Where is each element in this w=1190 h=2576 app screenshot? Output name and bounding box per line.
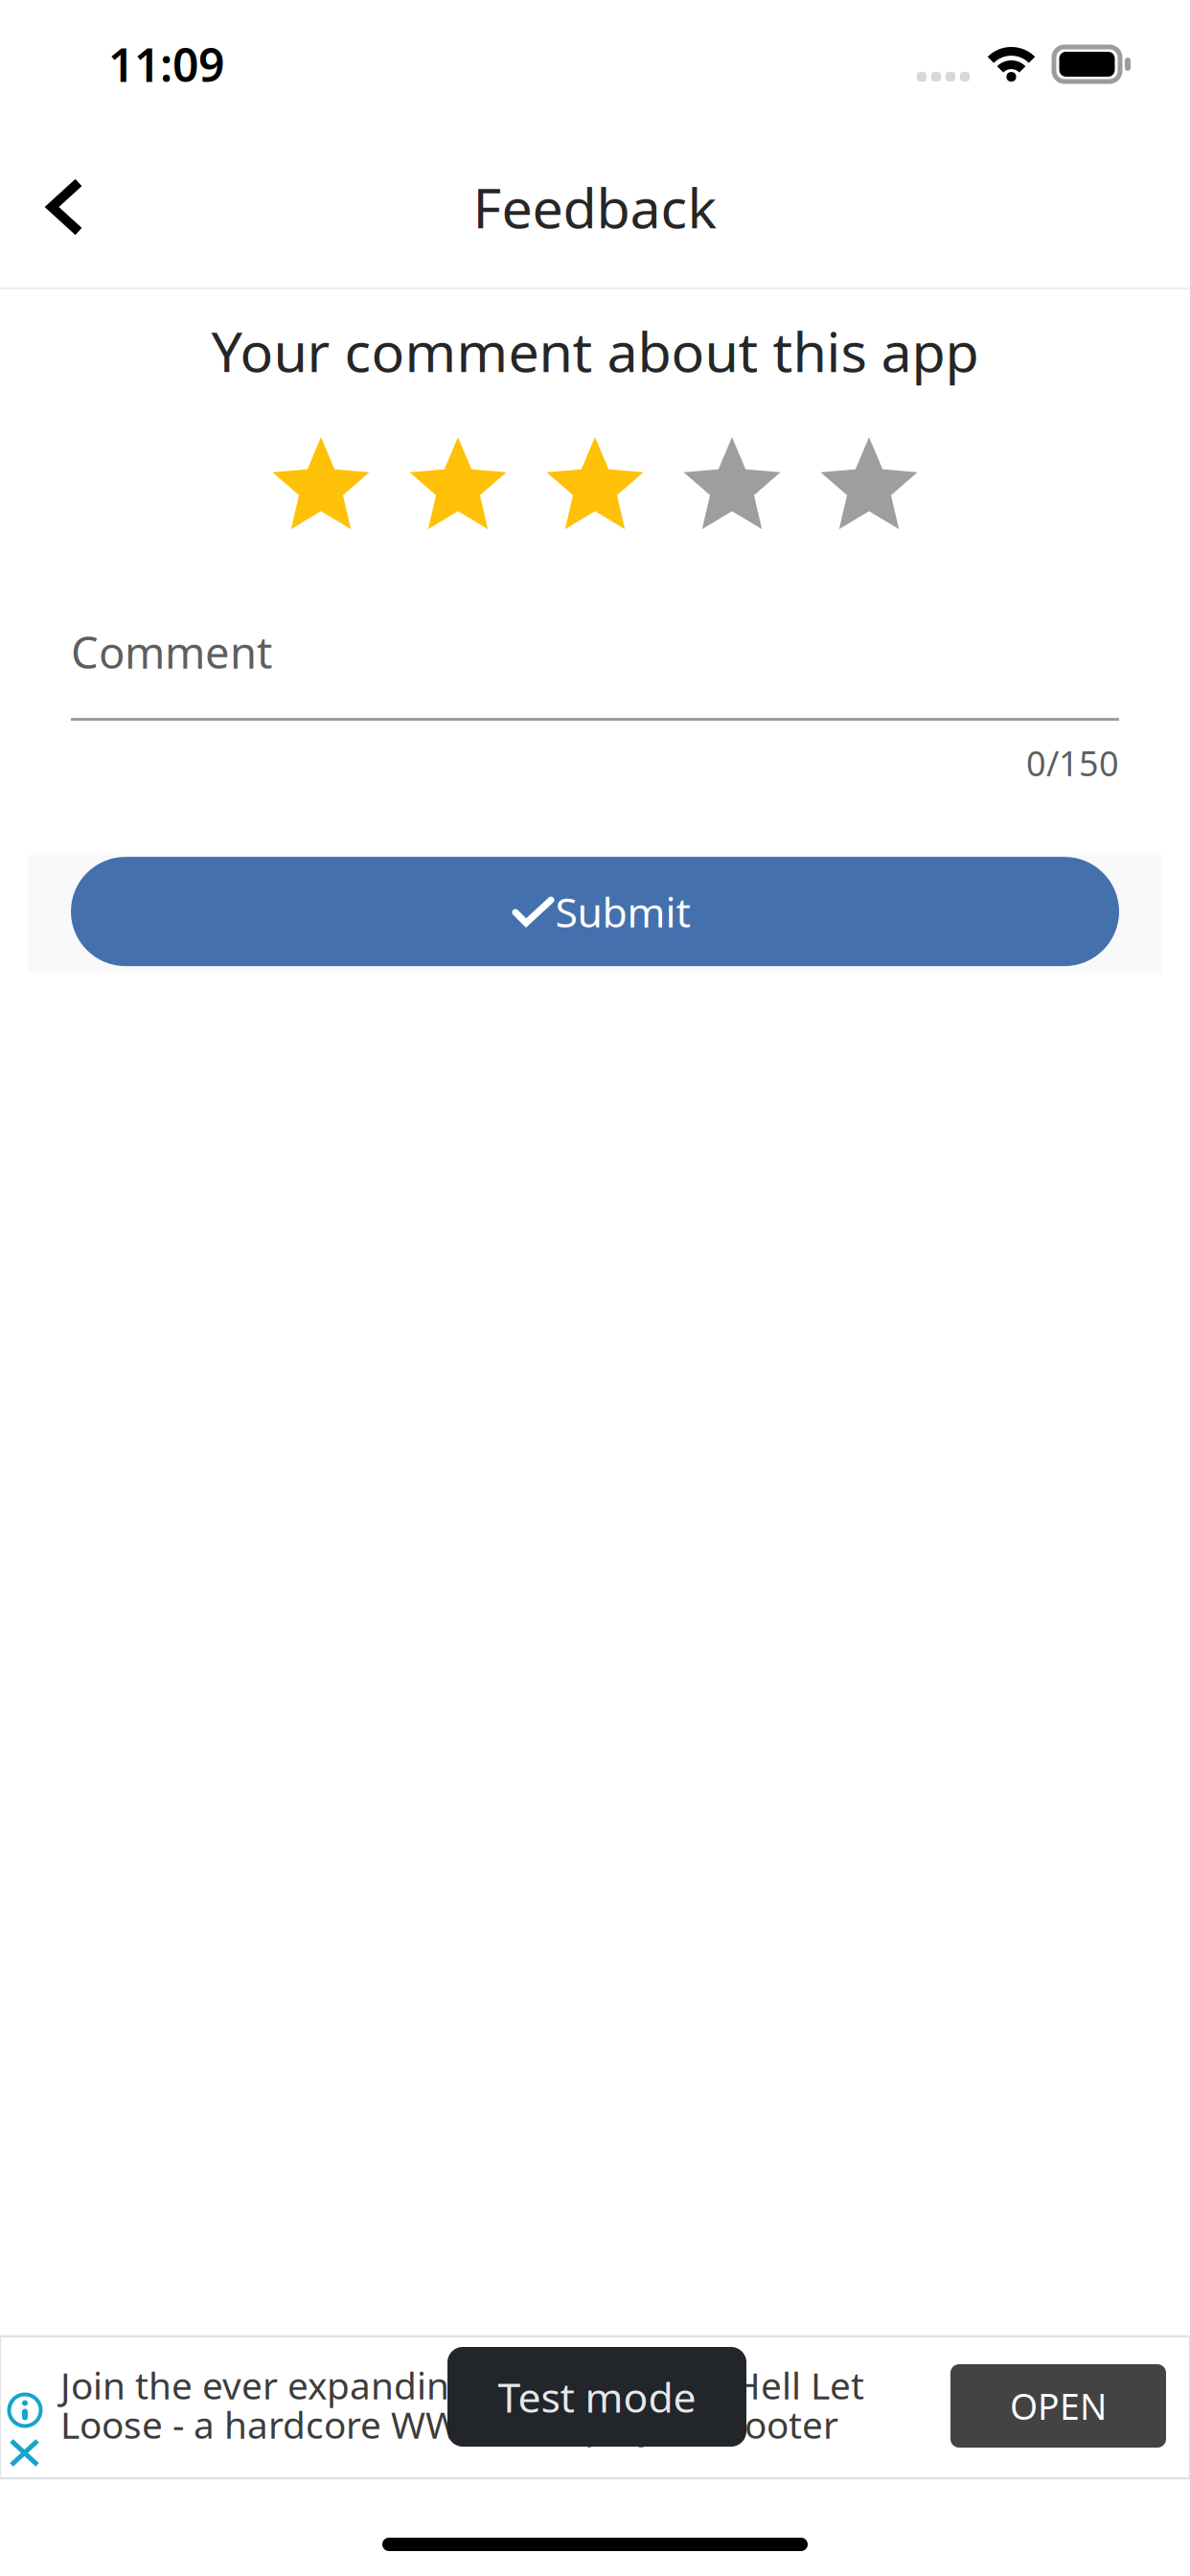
- staticText: 0/150: [1026, 740, 1119, 786]
- staticText: Join the ever expanding community of Hel…: [60, 2360, 864, 2410]
- staticText: Submit: [555, 884, 690, 939]
- staticText: Test mode: [498, 2370, 696, 2424]
- button[interactable]: Close ad: [0, 2336, 37, 2465]
- button[interactable]: Rate 5 of 5 stars: [821, 437, 917, 529]
- button[interactable]: Submit: [28, 855, 1162, 973]
- button[interactable]: Rate 2 of 5 stars: [410, 437, 506, 529]
- button[interactable]: Rate 1 of 5 stars: [273, 437, 369, 529]
- staticText: Your comment about this app: [211, 314, 979, 387]
- button[interactable]: Back: [0, 131, 128, 283]
- staticText: 11:09: [108, 34, 224, 95]
- staticText: Feedback: [473, 170, 717, 243]
- button[interactable]: OPEN: [950, 2364, 1166, 2448]
- staticText: OPEN: [1010, 2382, 1107, 2430]
- staticText: Loose - a hardcore WWII multiplayer shoo…: [60, 2400, 838, 2449]
- staticText: Comment: [71, 623, 272, 681]
- button[interactable]: Ad information: [0, 2336, 42, 2427]
- button[interactable]: Rate 4 of 5 stars: [684, 437, 780, 529]
- button[interactable]: Rate 3 of 5 stars: [547, 437, 643, 529]
